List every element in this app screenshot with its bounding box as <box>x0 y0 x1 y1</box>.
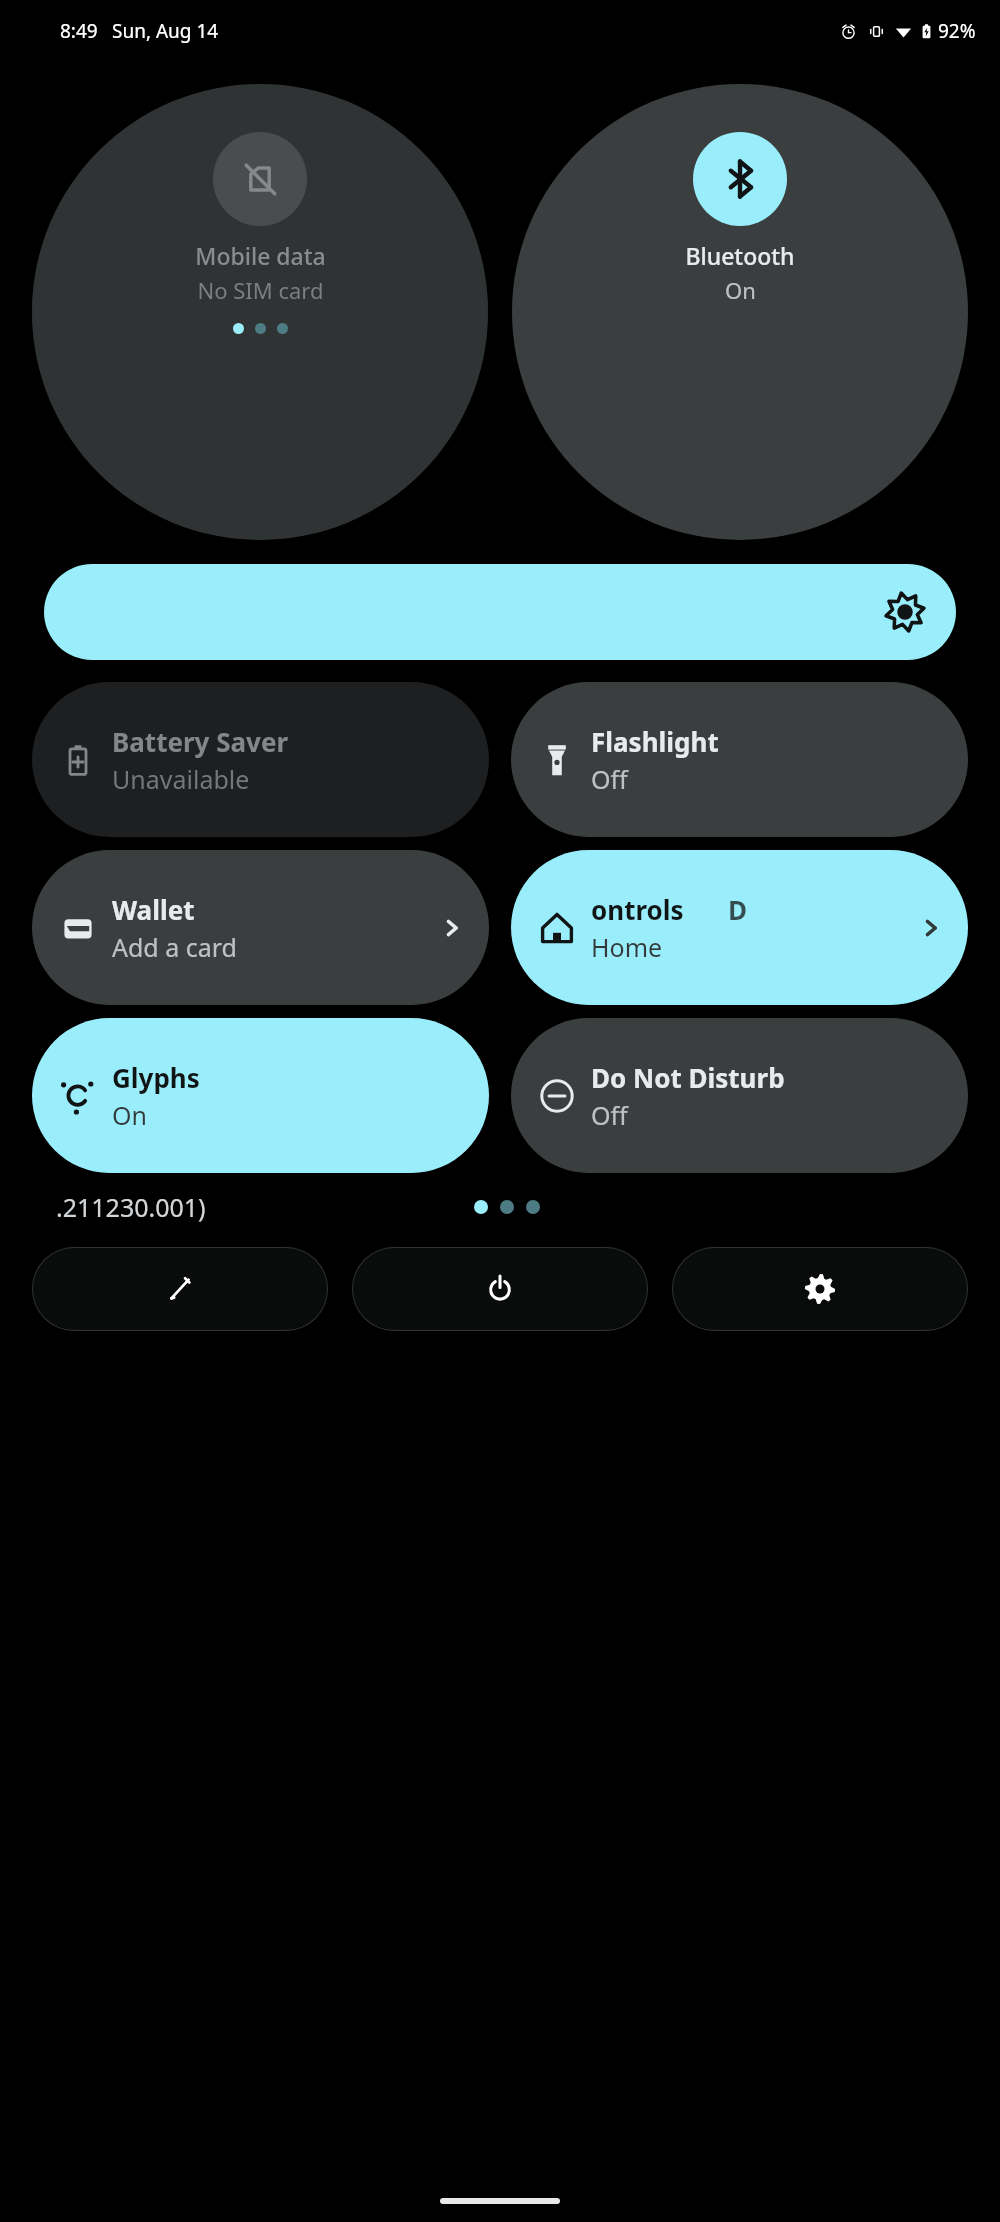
staticText: Home <box>591 930 663 964</box>
button[interactable]: Power <box>352 1247 648 1331</box>
staticText: 8:49 <box>60 18 98 44</box>
staticText: On <box>112 1098 147 1132</box>
staticText: Sun, Aug 14 <box>112 18 219 44</box>
button[interactable]: Bluetooth <box>512 84 968 540</box>
button[interactable]: Do Not Disturb <box>511 1018 968 1173</box>
staticText: .211230.001) <box>56 1190 206 1224</box>
button[interactable]: Mobile data <box>32 84 488 540</box>
button[interactable]: Battery Saver <box>32 682 489 837</box>
button[interactable]: Wallet <box>32 850 489 1005</box>
staticText: Wallet <box>112 892 195 927</box>
button[interactable]: Glyphs <box>32 1018 489 1173</box>
staticText: Add a card <box>112 930 237 964</box>
staticText: Battery Saver <box>112 724 289 759</box>
staticText: Unavailable <box>112 762 250 796</box>
staticText: 92% <box>938 18 976 44</box>
button[interactable]: Edit <box>32 1247 328 1331</box>
staticText: Bluetooth <box>685 240 795 271</box>
staticText: Glyphs <box>112 1060 200 1095</box>
staticText: D <box>728 892 748 927</box>
staticText: Mobile data <box>195 240 326 271</box>
button[interactable]: Flashlight <box>511 682 968 837</box>
button[interactable]: ontrols <box>511 850 968 1005</box>
button[interactable]: Brightness <box>44 564 956 660</box>
staticText: Flashlight <box>591 724 719 759</box>
button[interactable]: Settings <box>672 1247 968 1331</box>
staticText: No SIM card <box>197 275 324 305</box>
staticText: Do Not Disturb <box>591 1060 785 1095</box>
staticText: Off <box>591 1098 628 1132</box>
staticText: ontrols <box>591 892 684 927</box>
staticText: On <box>725 275 756 305</box>
staticText: Off <box>591 762 628 796</box>
